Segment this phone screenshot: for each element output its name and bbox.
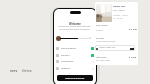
staticText: Summary — [61, 67, 71, 70]
button[interactable]: Continue to payment — [57, 75, 93, 81]
staticText: Price details — [96, 24, 108, 27]
button[interactable]: Personal details — [56, 46, 94, 51]
staticText: Confirmation — [61, 60, 74, 63]
staticText: 12 – 15 Mar — [113, 17, 123, 19]
button[interactable]: Confirmation — [56, 59, 94, 64]
staticText: 3 nights — [96, 29, 103, 31]
button[interactable]: Summary — [56, 66, 94, 71]
staticText: Incl. taxes & fees — [96, 59, 111, 61]
staticText: € 1,240 — [129, 28, 137, 31]
staticText: Continue to payment — [65, 77, 85, 80]
staticText: Personal details — [61, 47, 77, 50]
staticText: Choose your plan to get started with our… — [57, 25, 92, 31]
staticText: thrive — [22, 69, 32, 73]
staticText: € 1,310 — [129, 56, 137, 59]
staticText: Total today — [96, 56, 107, 59]
staticText: Select a method below — [96, 40, 116, 42]
button[interactable]: Payment — [56, 53, 94, 58]
staticText: Welcome — [69, 22, 81, 26]
staticText: •••• 4821 — [99, 49, 107, 51]
staticText: Pay with — [96, 37, 105, 40]
staticText: 2 guests · 1 room — [113, 14, 128, 16]
staticText: Nordic Loft — [113, 5, 126, 8]
staticText: Payment — [61, 54, 70, 57]
staticText: Oslo, Norway — [113, 9, 125, 12]
staticText: Credit or debit card — [99, 46, 116, 48]
staticText: verv — [10, 69, 18, 73]
button[interactable]: Credit or debit card — [95, 45, 135, 51]
